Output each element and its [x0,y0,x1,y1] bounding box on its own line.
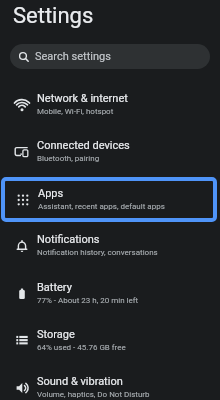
staticText: Notification history, conversations [37,248,158,257]
staticText: Assistant, recent apps, default apps [38,202,165,211]
button[interactable]: Network & internet [0,81,220,128]
button[interactable]: Battery [0,270,220,317]
staticText: 77% - About 23 h, 20 min left [37,296,139,305]
staticText: Battery [37,281,72,294]
staticText: Settings [13,3,94,29]
button[interactable]: Connected devices [0,128,220,175]
button[interactable]: Storage [0,317,220,364]
staticText: Bluetooth, pairing [37,154,100,163]
staticText: Sound & vibration [37,375,123,388]
button[interactable]: Search settings [10,44,210,69]
staticText: Network & internet [37,92,128,105]
staticText: Apps [38,187,64,200]
button[interactable]: Sound & vibration [0,364,220,400]
button[interactable]: Apps [1,177,217,222]
staticText: Volume, haptics, Do Not Disturb [37,390,150,399]
staticText: Mobile, Wi-Fi, hotspot [37,107,114,116]
staticText: Notifications [37,233,100,246]
staticText: 64% used - 45.76 GB free [37,343,126,352]
staticText: Storage [37,328,75,341]
staticText: Search settings [35,50,111,63]
button[interactable]: Notifications [0,222,220,269]
staticText: Connected devices [37,139,130,152]
